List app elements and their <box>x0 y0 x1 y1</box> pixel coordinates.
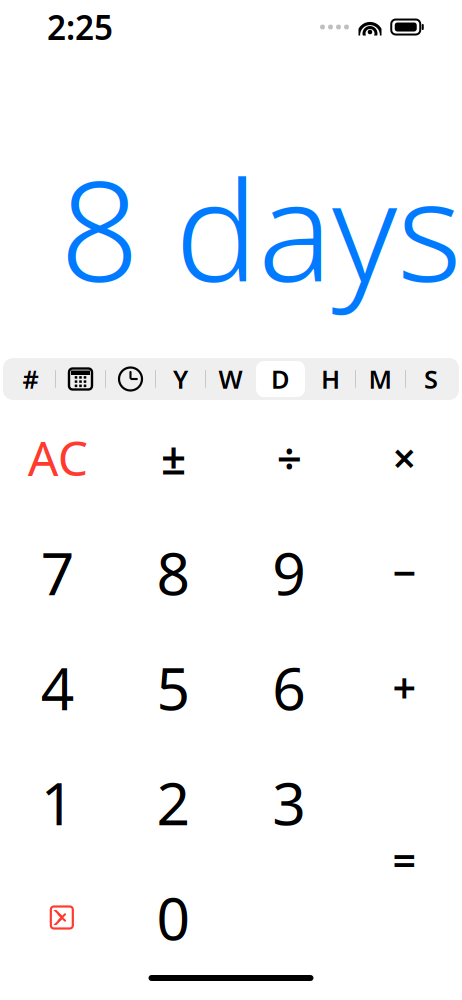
button[interactable]: + <box>347 630 462 745</box>
staticText: 4 <box>41 648 75 726</box>
button[interactable]: 4 <box>0 630 116 745</box>
button[interactable]: Number <box>6 361 55 397</box>
staticText: 8 <box>156 533 190 611</box>
button[interactable]: S <box>406 361 456 397</box>
staticText: W <box>218 362 242 396</box>
button[interactable]: 9 <box>231 515 347 630</box>
staticText: 2 <box>156 763 190 841</box>
button[interactable]: 3 <box>231 745 347 860</box>
staticText: M <box>368 362 392 396</box>
staticText: = <box>392 833 416 887</box>
button[interactable]: − <box>347 515 462 630</box>
button[interactable]: W <box>206 361 255 397</box>
staticText: 3 <box>272 763 306 841</box>
staticText: S <box>424 362 438 396</box>
staticText: ± <box>161 428 186 487</box>
staticText: D <box>271 362 290 396</box>
button[interactable]: Date <box>56 361 105 397</box>
button[interactable]: H <box>306 361 355 397</box>
staticText: H <box>321 362 340 396</box>
button[interactable]: 2 <box>116 745 231 860</box>
staticText: 6 <box>272 648 306 726</box>
staticText: × <box>392 430 416 485</box>
button[interactable]: = <box>347 745 462 975</box>
button[interactable]: 8 <box>116 515 231 630</box>
button[interactable]: 5 <box>116 630 231 745</box>
staticText: 2:25 <box>47 5 113 49</box>
button[interactable]: Y <box>156 361 205 397</box>
staticText: + <box>392 660 416 715</box>
button[interactable]: 1 <box>0 745 116 860</box>
staticText: Y <box>173 362 188 396</box>
staticText: − <box>392 545 416 600</box>
button[interactable]: AC <box>0 400 116 515</box>
button[interactable]: 0 <box>116 860 231 975</box>
button[interactable]: Delete <box>0 860 116 975</box>
staticText: 8 days <box>60 136 462 320</box>
staticText: 1 <box>41 763 75 841</box>
button[interactable]: Time <box>106 361 155 397</box>
button[interactable]: × <box>347 400 462 515</box>
staticText: 0 <box>156 878 190 956</box>
staticText: AC <box>28 426 88 489</box>
staticText: 9 <box>272 533 306 611</box>
staticText: ÷ <box>277 428 302 487</box>
button[interactable]: 6 <box>231 630 347 745</box>
button[interactable]: D <box>256 361 305 397</box>
staticText: 5 <box>156 648 190 726</box>
button[interactable]: ± <box>116 400 231 515</box>
button[interactable]: ÷ <box>231 400 347 515</box>
button[interactable]: 7 <box>0 515 116 630</box>
staticText: 7 <box>41 533 75 611</box>
button[interactable]: M <box>356 361 405 397</box>
staticText: # <box>22 362 38 396</box>
